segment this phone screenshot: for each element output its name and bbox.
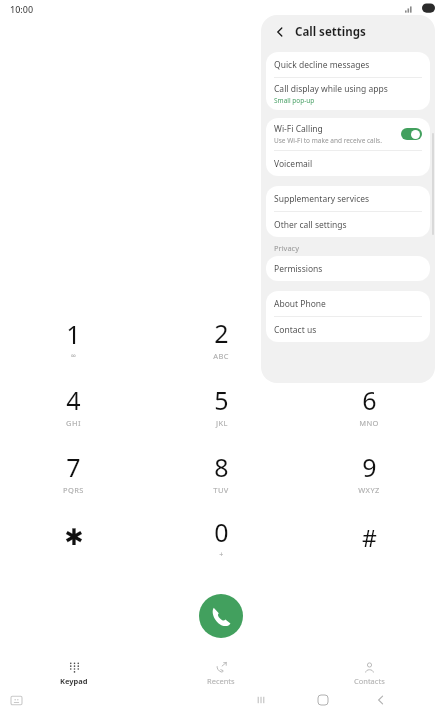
button[interactable]: 5	[147, 379, 295, 431]
button[interactable]: 8	[147, 446, 295, 498]
staticText: ∞	[70, 352, 77, 360]
button[interactable]: Wi-Fi Calling	[266, 118, 430, 150]
staticText: Call settings	[295, 24, 366, 40]
button[interactable]: Quick decline messages	[266, 52, 430, 77]
button[interactable]: 0	[147, 511, 295, 563]
staticText: Quick decline messages	[274, 59, 370, 71]
staticText: 5	[214, 383, 229, 417]
staticText: Supplementary services	[274, 193, 370, 205]
staticText: PQRS	[63, 485, 84, 495]
button[interactable]: Recent apps	[248, 690, 274, 710]
staticText: Keypad	[60, 676, 88, 686]
button[interactable]: 9	[295, 446, 443, 498]
staticText: 10:00	[10, 3, 34, 15]
button[interactable]: 2	[147, 312, 295, 364]
staticText: Voicemail	[274, 158, 313, 170]
staticText: 3	[362, 316, 377, 350]
staticText: Contact us	[274, 324, 317, 336]
button[interactable]: Contact us	[266, 317, 430, 342]
staticText: Small pop-up	[274, 96, 315, 105]
button[interactable]: #	[295, 511, 443, 563]
staticText: +	[219, 550, 224, 560]
button[interactable]: ✱	[0, 511, 147, 563]
button[interactable]: Recents	[147, 658, 295, 690]
staticText: #	[362, 522, 377, 553]
staticText: Recents	[207, 676, 235, 686]
button[interactable]: 1	[0, 312, 147, 364]
button[interactable]: 7	[0, 446, 147, 498]
button[interactable]: Keypad	[0, 658, 147, 690]
other: Hide keyboard	[11, 695, 22, 706]
button[interactable]: Supplementary services	[266, 186, 430, 211]
staticText: 1	[66, 317, 81, 351]
staticText: ✱	[64, 524, 84, 551]
staticText: Privacy	[274, 243, 300, 253]
staticText: Call display while using apps	[274, 83, 388, 95]
staticText: 4	[66, 383, 81, 417]
button[interactable]: 3	[295, 312, 443, 364]
staticText: WXYZ	[358, 485, 380, 495]
staticText: ABC	[213, 351, 229, 361]
staticText: About Phone	[274, 298, 326, 310]
staticText: 6	[362, 383, 377, 417]
button[interactable]: Permissions	[266, 256, 430, 281]
button[interactable]: About Phone	[266, 291, 430, 316]
staticText: 7	[66, 450, 81, 484]
staticText: Use Wi-Fi to make and receive calls.	[274, 136, 382, 145]
staticText: TUV	[213, 485, 229, 495]
staticText: 8	[214, 450, 229, 484]
button[interactable]: Contacts	[295, 658, 443, 690]
button[interactable]: Back	[271, 23, 289, 41]
button[interactable]: Call	[199, 594, 243, 638]
button[interactable]: Call display while using apps	[266, 78, 430, 110]
staticText: 9	[362, 450, 377, 484]
staticText: Contacts	[354, 676, 385, 686]
staticText: Other call settings	[274, 219, 347, 231]
staticText: Wi-Fi Calling	[274, 123, 323, 135]
button[interactable]: 4	[0, 379, 147, 431]
button[interactable]: Other call settings	[266, 212, 430, 237]
staticText: GHI	[66, 418, 81, 428]
button[interactable]: Home	[310, 690, 336, 710]
button[interactable]: Back	[368, 690, 394, 710]
button[interactable]: Wi-Fi Calling toggle	[401, 128, 422, 140]
button[interactable]: Voicemail	[266, 151, 430, 176]
staticText: JKL	[216, 418, 228, 428]
staticText: 2	[214, 316, 229, 350]
staticText: 0	[214, 515, 229, 549]
staticText: MNO	[359, 418, 379, 428]
button[interactable]: 6	[295, 379, 443, 431]
staticText: Permissions	[274, 263, 323, 275]
